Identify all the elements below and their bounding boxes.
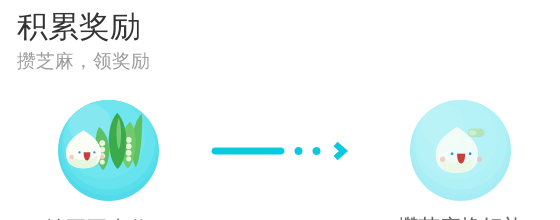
- button[interactable]: 攒芝麻换好礼: [370, 100, 550, 220]
- staticText: 积累奖励: [17, 8, 141, 46]
- staticText: 攒芝麻换好礼: [397, 214, 523, 220]
- staticText: 抽豆豆大奖x1: [44, 214, 172, 220]
- staticText: 攒芝麻，领奖励: [17, 50, 150, 73]
- button[interactable]: 抽豆豆大奖x1: [18, 100, 198, 220]
